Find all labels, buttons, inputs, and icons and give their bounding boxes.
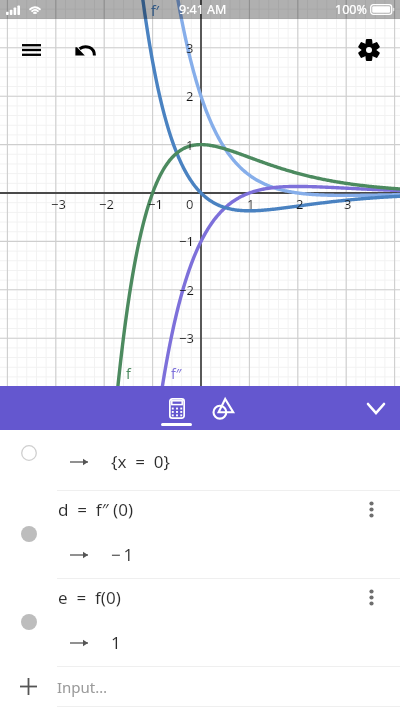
staticText: 3 (186, 39, 194, 57)
staticText: −3 (179, 329, 194, 347)
button[interactable]: d = f″ (0) (0, 490, 400, 578)
button[interactable]: Menu (7, 26, 55, 74)
staticText: −1 (148, 195, 163, 213)
staticText: 100% (335, 1, 367, 18)
button[interactable]: {x = 0} (0, 430, 400, 490)
button[interactable]: e = f(0) (0, 578, 400, 666)
button[interactable]: Calculator (153, 386, 200, 430)
button[interactable]: Undo (61, 27, 109, 75)
button[interactable]: More options (353, 579, 389, 615)
staticText: −2 (179, 281, 194, 299)
button[interactable]: Add (0, 666, 57, 707)
staticText: 1 (111, 631, 121, 654)
button[interactable]: Collapse (352, 386, 400, 430)
staticText: f (126, 364, 131, 383)
staticText: {x = 0} (111, 450, 171, 473)
staticText: f′ (151, 1, 160, 20)
staticText: 3 (344, 195, 352, 213)
staticText: e = f(0) (58, 586, 121, 609)
staticText: 2 (186, 87, 194, 105)
staticText: −1 (179, 232, 194, 250)
staticText: −3 (51, 195, 66, 213)
staticText: 2 (296, 195, 304, 213)
button[interactable]: Settings (345, 26, 393, 74)
staticText: 9:41 AM (179, 1, 227, 18)
button[interactable]: More options (353, 491, 389, 527)
staticText: 1 (247, 195, 255, 213)
button[interactable]: Geometry (204, 386, 240, 430)
staticText: f″ (171, 364, 182, 383)
staticText: 0 (186, 195, 194, 213)
staticText: − 1 (111, 543, 134, 566)
staticText: 1 (186, 136, 194, 154)
staticText: Input… (57, 677, 108, 697)
staticText: −2 (99, 195, 114, 213)
staticText: d = f″ (0) (58, 498, 133, 521)
